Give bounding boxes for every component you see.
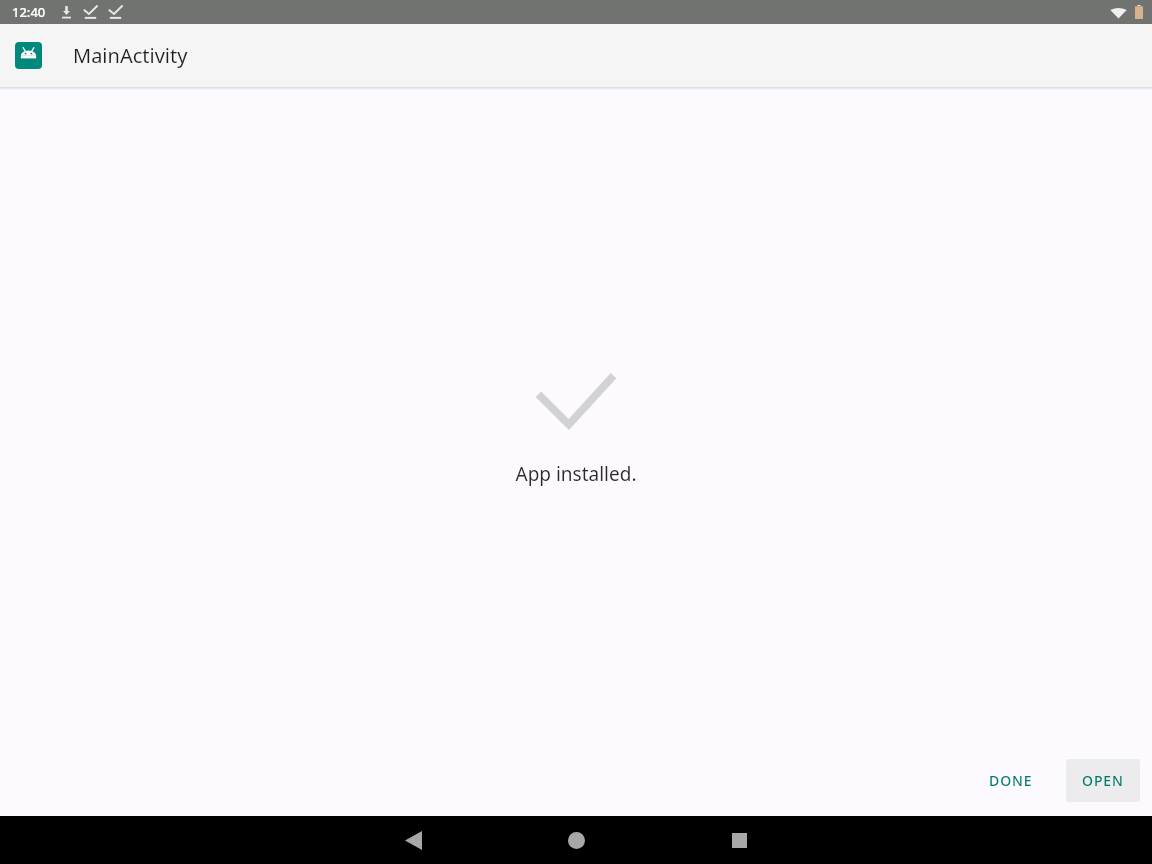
button[interactable]: Back [383,816,443,864]
staticText: DONE [989,771,1033,790]
button[interactable]: Recents [709,816,769,864]
button[interactable]: DONE [973,759,1049,802]
button[interactable]: App icon [15,42,42,69]
staticText: App installed. [515,461,637,487]
button[interactable]: OPEN [1066,759,1140,802]
staticText: MainActivity [73,42,188,69]
staticText: 12:40 [12,3,46,21]
button[interactable]: Home [546,816,606,864]
staticText: OPEN [1082,771,1124,790]
